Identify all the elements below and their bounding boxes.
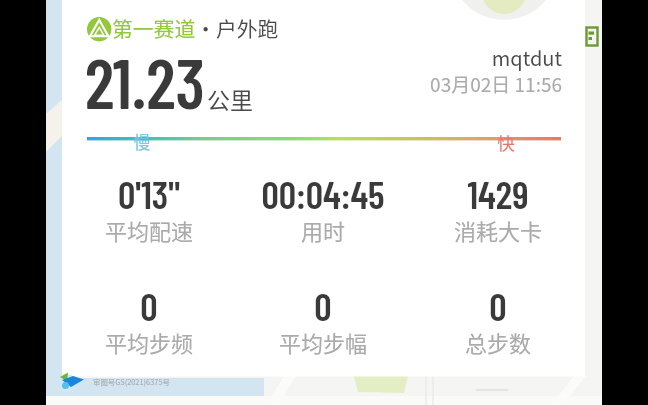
- staticText: 消耗大卡: [411, 214, 585, 250]
- staticText: 03月02日 11:56: [0, 70, 562, 104]
- staticText: mqtdut: [0, 43, 562, 79]
- staticText: 公里: [207, 82, 648, 123]
- staticText: 用时: [236, 214, 410, 250]
- staticText: 平均步幅: [236, 326, 410, 362]
- button[interactable]: 0: [236, 278, 410, 368]
- staticText: 0: [62, 282, 236, 332]
- staticText: 00:04:45: [236, 170, 410, 220]
- staticText: 审图号GS(2021)6375号: [93, 376, 648, 389]
- staticText: 第一赛道·户外跑: [112, 13, 279, 43]
- button[interactable]: 1429: [411, 166, 585, 256]
- staticText: 1429: [411, 170, 585, 220]
- staticText: 慢: [0, 130, 452, 160]
- staticText: 平均步频: [62, 326, 236, 362]
- other: App logo: [87, 17, 111, 41]
- staticText: 总步数: [411, 326, 585, 362]
- staticText: 0'13": [62, 170, 236, 220]
- staticText: 快: [196, 130, 648, 162]
- staticText: 0: [236, 282, 410, 332]
- staticText: 平均配速: [62, 214, 236, 250]
- staticText: 0: [411, 282, 585, 332]
- button[interactable]: 0: [62, 278, 236, 368]
- button[interactable]: 00:04:45: [236, 166, 410, 256]
- button[interactable]: 0'13": [62, 166, 236, 256]
- staticText: 21.23: [85, 40, 648, 164]
- button[interactable]: 第一赛道·户外跑: [112, 13, 332, 43]
- button[interactable]: 0: [411, 278, 585, 368]
